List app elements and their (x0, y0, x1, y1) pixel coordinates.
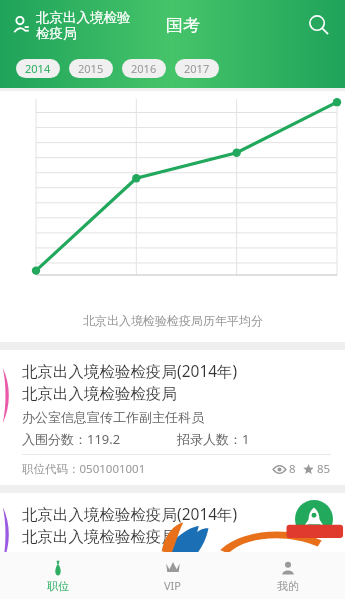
button[interactable]: 2014 (16, 59, 60, 78)
button[interactable]: 2015 (69, 59, 113, 78)
staticText: 北京出入境检验检疫局(2014年) (22, 360, 238, 381)
staticText: 职位 (47, 579, 69, 593)
staticText: 北京出入境检验检疫局 (22, 527, 177, 547)
staticText: 入围分数：119.2 (22, 430, 121, 448)
button[interactable]: 我的 (230, 552, 345, 599)
staticText: 2017 (184, 61, 210, 76)
staticText: 职位代码：0501001001 (22, 461, 146, 477)
staticText: 我的 (277, 579, 299, 593)
button[interactable]: 职位 (0, 552, 115, 599)
button[interactable]: Back to top (295, 500, 333, 538)
button[interactable]: 2017 (175, 59, 219, 78)
staticText: 85 (317, 461, 331, 477)
staticText: 办公室信息宣传工作副主任科员 (22, 409, 204, 425)
staticText: 国考 (166, 15, 200, 36)
staticText: VIP (164, 578, 181, 593)
staticText: 北京出入境检验检疫局 (22, 384, 177, 404)
button[interactable]: 北京出入境检验检疫局(2014年) (0, 350, 345, 485)
staticText: 2015 (78, 61, 104, 76)
staticText: 2016 (131, 61, 157, 76)
button[interactable]: VIP (115, 552, 230, 599)
button[interactable]: Search (307, 13, 331, 37)
button[interactable]: 2016 (122, 59, 166, 78)
staticText: 招录人数：1 (177, 430, 250, 448)
staticText: 8 (289, 461, 296, 477)
staticText: 北京出入境检验检疫局(2014年) (22, 503, 238, 524)
button[interactable]: Account (8, 12, 34, 38)
button[interactable]: 北京出入境检验检疫局(2014年) (0, 493, 345, 585)
staticText: 北京出入境检验 检疫局 (36, 9, 131, 42)
staticText: 北京出入境检验检疫局历年平均分 (83, 313, 263, 328)
staticText: 2014 (25, 61, 51, 76)
